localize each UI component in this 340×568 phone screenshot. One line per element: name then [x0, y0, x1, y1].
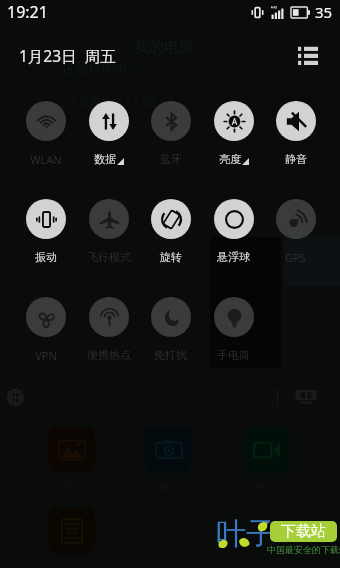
button[interactable]: 振动	[14, 199, 77, 264]
staticText: GPS	[285, 250, 306, 265]
button[interactable]: GPS	[264, 199, 327, 265]
button[interactable]: 相机	[145, 426, 192, 494]
button[interactable]: 视频	[243, 426, 290, 494]
staticText: 悬浮球	[217, 250, 250, 264]
staticText: 飞行模式	[87, 250, 131, 264]
button[interactable]: 手电筒	[202, 297, 265, 362]
button[interactable]: Search	[3, 386, 332, 408]
staticText: 35	[315, 2, 333, 22]
button[interactable]: 便携热点	[77, 297, 140, 362]
staticText: 静音	[285, 152, 307, 166]
button[interactable]: 旋转	[139, 199, 202, 264]
staticText: 我的电脑	[134, 38, 194, 57]
button[interactable]: VPN	[14, 297, 77, 363]
button[interactable]: 亮度	[202, 101, 265, 166]
staticText: 19:21	[7, 1, 48, 23]
button[interactable]: 悬浮球	[202, 199, 265, 264]
button[interactable]: 静音	[264, 101, 327, 166]
staticText: 便携热点	[87, 348, 131, 362]
button[interactable]: 笔记	[48, 507, 95, 568]
staticText: 蓝牙	[160, 152, 182, 166]
staticText: 中国最安全的下载站	[267, 544, 340, 555]
button[interactable]: 数据	[77, 101, 140, 166]
button[interactable]: 照片	[48, 426, 95, 494]
staticText: 6.3 可用,共 17.1 GB	[60, 95, 158, 110]
staticText: 设置程序中心	[62, 60, 140, 76]
staticText: 叶子	[216, 515, 276, 553]
staticText: 亮度	[219, 152, 241, 166]
staticText: VPN	[35, 348, 57, 363]
staticText: 数据	[94, 152, 116, 166]
staticText: WLAN	[30, 152, 62, 167]
staticText: 1月23日 周五	[19, 45, 116, 66]
button[interactable]: 飞行模式	[77, 199, 140, 264]
button[interactable]: 免打扰	[139, 297, 202, 362]
other: Search	[6, 388, 25, 407]
staticText: 免打扰	[154, 348, 187, 362]
button[interactable]: 蓝牙	[139, 101, 202, 166]
staticText: 手电筒	[217, 348, 250, 362]
staticText: 旋转	[160, 250, 182, 264]
staticText: 下载站	[281, 522, 326, 541]
button[interactable]: WLAN	[14, 101, 77, 167]
staticText: 振动	[35, 250, 57, 264]
button[interactable]: Edit quick settings	[296, 43, 320, 67]
